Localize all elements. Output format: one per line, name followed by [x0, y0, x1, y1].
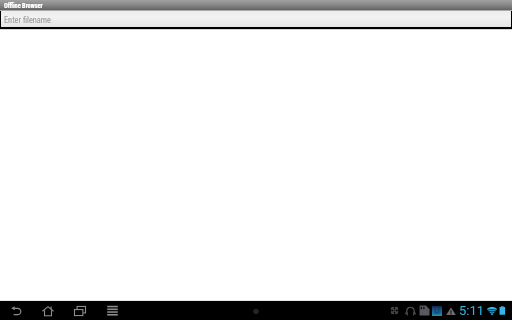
other: SD card — [419, 305, 430, 316]
other: App notification — [432, 306, 442, 316]
button[interactable]: Status and notifications — [386, 301, 512, 320]
button[interactable]: Home — [32, 301, 64, 320]
other: Headphones connected — [405, 305, 416, 316]
button[interactable]: Recent apps — [64, 301, 96, 320]
staticText: Offline Browser — [4, 2, 43, 9]
other: Screenshot — [390, 306, 399, 315]
button[interactable]: Enter filename — [0, 11, 512, 29]
other: Warning — [446, 306, 456, 316]
button[interactable]: Menu — [96, 301, 128, 320]
staticText: Enter filename — [4, 15, 51, 25]
other: Wi-Fi — [487, 306, 497, 316]
button[interactable]: Back — [0, 301, 32, 320]
button[interactable]: 5:11 — [459, 303, 485, 318]
other: Battery — [498, 306, 507, 315]
staticText: 5:11 — [459, 303, 485, 318]
